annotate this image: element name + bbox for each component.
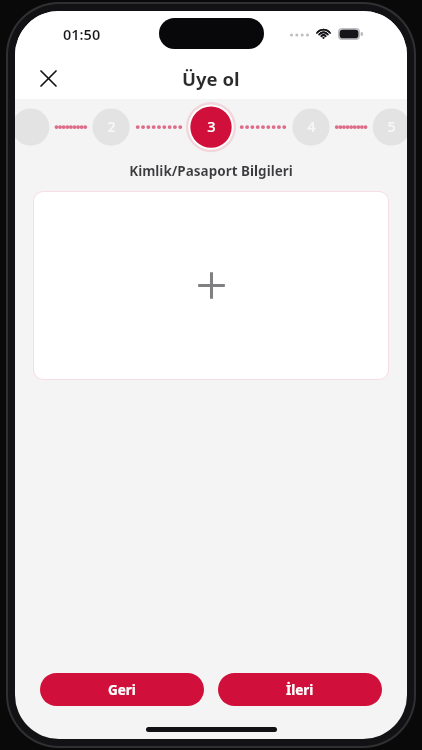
staticText: 5	[387, 117, 396, 136]
staticText: 4	[307, 117, 316, 136]
button[interactable]: Adım 5	[378, 113, 404, 139]
button[interactable]: Belge ekle	[34, 192, 388, 379]
staticText: Kimlik/Pasaport Bilgileri	[15, 162, 407, 180]
staticText: Geri	[108, 681, 136, 699]
staticText: 3	[207, 116, 216, 136]
button[interactable]: Geri	[40, 673, 204, 706]
staticText: 2	[107, 117, 116, 136]
staticText: 01:50	[63, 24, 101, 44]
staticText: Üye ol	[182, 66, 240, 91]
staticText: İleri	[286, 681, 314, 699]
button[interactable]: İleri	[218, 673, 382, 706]
button[interactable]: Kapat	[29, 59, 67, 97]
button[interactable]: Adım 2	[98, 113, 124, 139]
button[interactable]: Adım 3	[198, 113, 224, 139]
button[interactable]: Adım 4	[298, 113, 324, 139]
